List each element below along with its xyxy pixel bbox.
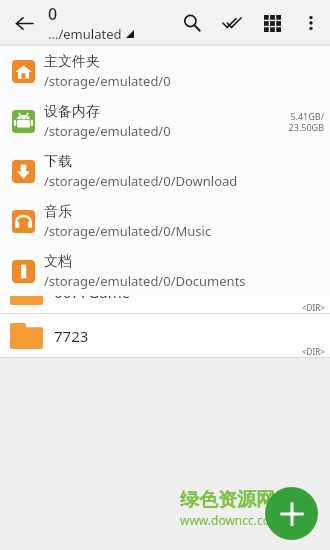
staticText: 4399MCPE	[54, 238, 129, 258]
button[interactable]: Select all	[212, 0, 252, 46]
button[interactable]: 主文件夹	[0, 46, 330, 96]
button[interactable]: Back	[0, 0, 48, 46]
staticText: /storage/emulated/0/Download	[44, 172, 238, 190]
staticText: 绿色资源网	[180, 488, 275, 512]
staticText: 0	[48, 3, 58, 25]
staticText: ...	[54, 59, 67, 79]
button[interactable]: 4399MCPE	[0, 226, 330, 270]
staticText: 7723	[54, 326, 89, 346]
staticText: 360Download	[54, 106, 152, 126]
button[interactable]: 0	[48, 0, 160, 46]
staticText: <DIR>	[302, 346, 325, 357]
staticText: 设备内存	[44, 103, 100, 121]
button[interactable]: ...	[0, 44, 330, 94]
staticText: /storage/emulated/0	[44, 72, 171, 90]
button[interactable]: 设备内存	[0, 96, 330, 146]
button[interactable]: 6677Game	[0, 270, 330, 314]
button[interactable]: More options	[292, 0, 330, 46]
staticText: 360freewifi	[54, 150, 133, 170]
button[interactable]: Grid view	[252, 0, 292, 46]
staticText: 音乐	[44, 203, 72, 221]
button[interactable]: 文档	[0, 246, 330, 296]
button[interactable]: 360gamecentersdk	[0, 182, 330, 226]
button[interactable]: 下载	[0, 146, 330, 196]
staticText: 360gamecentersdk	[54, 194, 190, 214]
staticText: <DIR>	[302, 126, 325, 137]
button[interactable]: 360Download	[0, 94, 330, 138]
button[interactable]: 音乐	[0, 196, 330, 246]
staticText: <DIR>	[302, 302, 325, 313]
staticText: /storage/emulated/0/Music	[44, 222, 212, 240]
staticText: 下载	[44, 153, 72, 171]
button[interactable]: 7723	[0, 314, 330, 358]
staticText: /storage/emulated/0	[44, 122, 171, 140]
staticText: www.downcc.com	[180, 512, 282, 528]
staticText: .../emulated	[48, 25, 122, 43]
button[interactable]: Search	[172, 0, 212, 46]
staticText: 6677Game	[54, 282, 131, 302]
button[interactable]: Add	[265, 487, 318, 540]
staticText: 文档	[44, 253, 72, 271]
staticText: /storage/emulated/0/Documents	[44, 272, 246, 290]
staticText: 5.41GB/ 23.50GB	[288, 110, 324, 133]
staticText: 主文件夹	[44, 53, 100, 71]
button[interactable]: 360freewifi	[0, 138, 330, 182]
